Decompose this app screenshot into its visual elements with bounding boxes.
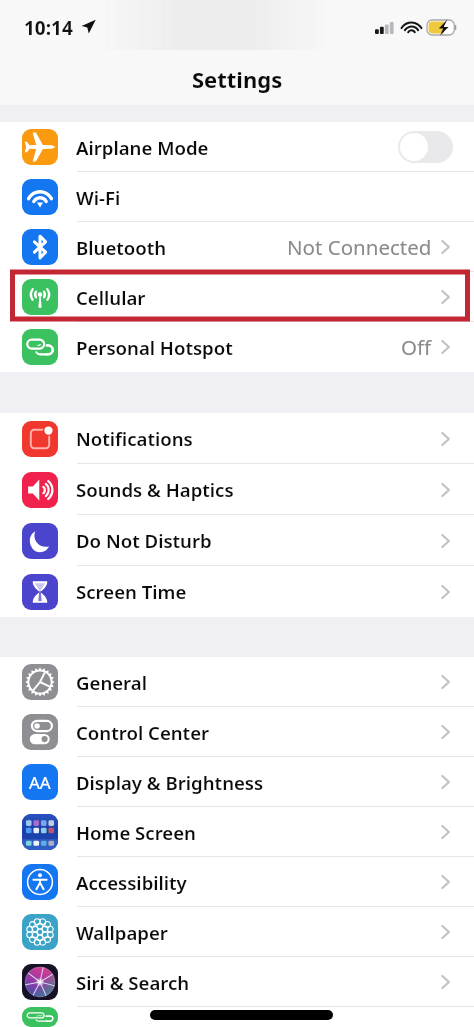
button[interactable]: Do Not Disturb bbox=[0, 515, 474, 566]
staticText: Accessibility bbox=[76, 870, 187, 895]
staticText: Notifications bbox=[76, 426, 193, 451]
button[interactable]: Wi-Fi bbox=[0, 172, 474, 222]
staticText: Home Screen bbox=[76, 820, 196, 845]
staticText: Off bbox=[401, 333, 432, 361]
button[interactable]: Cellular bbox=[0, 272, 474, 322]
staticText: Airplane Mode bbox=[76, 135, 209, 160]
staticText: Settings bbox=[192, 64, 283, 94]
staticText: Wallpaper bbox=[76, 920, 168, 945]
staticText: Siri & Search bbox=[76, 970, 190, 995]
button[interactable]: Airplane Mode bbox=[0, 122, 474, 172]
staticText: Not Connected bbox=[287, 233, 432, 261]
staticText: Personal Hotspot bbox=[76, 335, 233, 360]
button[interactable]: Sounds & Haptics bbox=[0, 464, 474, 515]
staticText: Control Center bbox=[76, 720, 210, 745]
staticText: AA bbox=[29, 771, 51, 794]
staticText: Wi-Fi bbox=[76, 185, 121, 210]
button[interactable]: Accessibility bbox=[0, 857, 474, 907]
staticText: Do Not Disturb bbox=[76, 528, 212, 553]
button[interactable]: Bluetooth bbox=[0, 222, 474, 272]
button[interactable]: Personal Hotspot bbox=[0, 322, 474, 372]
button[interactable]: Notifications bbox=[0, 413, 474, 464]
staticText: Screen Time bbox=[76, 579, 187, 604]
staticText: 10:14 bbox=[24, 15, 73, 41]
button[interactable]: AA bbox=[0, 757, 474, 807]
staticText: Bluetooth bbox=[76, 235, 167, 260]
staticText: Cellular bbox=[76, 285, 146, 310]
button[interactable]: Airplane Mode toggle bbox=[398, 131, 453, 163]
button[interactable]: Home Screen bbox=[0, 807, 474, 857]
button[interactable]: Wallpaper bbox=[0, 907, 474, 957]
staticText: Sounds & Haptics bbox=[76, 477, 234, 502]
button[interactable] bbox=[0, 1007, 474, 1027]
button[interactable]: Control Center bbox=[0, 707, 474, 757]
button[interactable]: Screen Time bbox=[0, 566, 474, 617]
staticText: Display & Brightness bbox=[76, 770, 264, 795]
button[interactable]: General bbox=[0, 657, 474, 707]
staticText: General bbox=[76, 670, 147, 695]
button[interactable]: Siri & Search bbox=[0, 957, 474, 1007]
